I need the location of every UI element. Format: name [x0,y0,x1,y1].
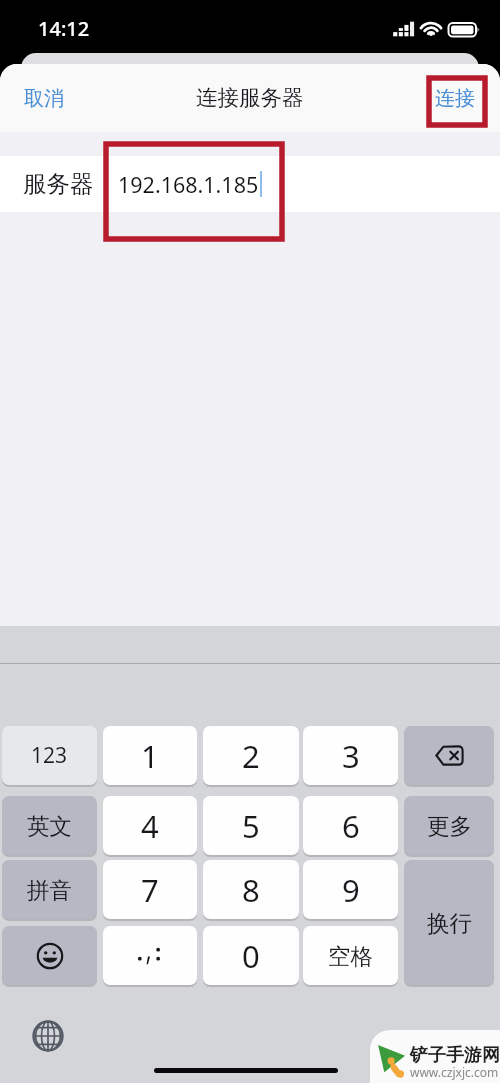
button[interactable]: Backspace [404,726,494,785]
staticText: www.czjxjc.com [410,1064,499,1080]
staticText: 更多 [427,812,472,840]
staticText: 3 [342,735,360,777]
button[interactable]: 拼音 [2,860,97,919]
staticText: 6 [342,805,360,847]
staticText: 7 [141,869,159,911]
staticText: 连接 [435,86,475,111]
button[interactable]: 换行 [404,860,494,985]
staticText: 192.168.1.185 [118,170,259,199]
button[interactable]: 8 [203,860,299,919]
staticText: 取消 [24,86,64,111]
staticText: 4 [141,805,159,847]
button[interactable]: 6 [303,796,398,855]
staticText: 铲子手游网 [410,1044,500,1067]
button[interactable]: 服务器 [0,156,500,212]
button[interactable]: 连接 [417,72,500,125]
button[interactable]: 123 [2,726,97,785]
button[interactable]: Emoji keyboard [2,926,97,985]
button[interactable]: 取消 [0,72,82,125]
button[interactable] [103,926,197,985]
staticText: 123 [31,741,68,770]
button[interactable]: 5 [203,796,299,855]
button[interactable]: 2 [203,726,299,785]
staticText: 2 [242,735,260,777]
staticText: 空格 [328,942,373,970]
staticText: 拼音 [27,876,72,904]
button[interactable]: 7 [103,860,197,919]
staticText: 1 [141,735,159,777]
staticText: 连接服务器 [196,84,304,111]
button[interactable]: 4 [103,796,197,855]
button[interactable]: 3 [303,726,398,785]
staticText: 14:12 [38,15,90,42]
button[interactable]: 空格 [303,926,398,985]
button[interactable]: 英文 [2,796,97,855]
button[interactable]: 更多 [404,796,494,855]
staticText: 9 [342,869,360,911]
button[interactable]: 9 [303,860,398,919]
staticText: 8 [242,869,260,911]
button[interactable]: 1 [103,726,197,785]
staticText: 服务器 [23,169,94,199]
button[interactable]: 0 [203,926,299,985]
staticText: 5 [242,805,260,847]
staticText: 0 [242,935,260,977]
button[interactable]: Switch keyboard language [26,1014,70,1058]
staticText: 换行 [427,909,472,937]
staticText: 英文 [27,812,72,840]
